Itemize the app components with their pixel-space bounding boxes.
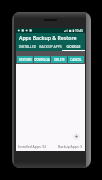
staticText: DOWNLOAD: [34, 58, 50, 62]
button[interactable]: DELETE: [51, 56, 67, 63]
button[interactable]: RESTORE: [17, 56, 33, 63]
button[interactable]: GOOGLE APPS: [62, 42, 85, 51]
button[interactable]: Add backup: [73, 133, 80, 140]
button[interactable]: CANCEL: [68, 56, 84, 63]
staticText: CANCEL: [70, 58, 82, 62]
staticText: BACKUP APPS: [39, 44, 62, 49]
staticText: Apps Backup & Restore: [19, 34, 77, 41]
button[interactable]: Apps Backup & Restore: [16, 33, 85, 42]
staticText: GOOGLE APPS: [62, 44, 85, 49]
button[interactable]: INSTALLED APPS: [16, 42, 39, 51]
staticText: DELETE: [54, 58, 65, 62]
staticText: Backup Apps: 5: [58, 144, 83, 149]
button[interactable]: BACKUP APPS: [39, 42, 62, 51]
staticText: RESTORE: [19, 58, 32, 62]
staticText: Installed Apps: 92: [18, 144, 47, 149]
staticText: 10:45: [75, 29, 84, 33]
button[interactable]: DOWNLOAD: [34, 56, 50, 63]
staticText: INSTALLED APPS: [16, 44, 39, 49]
